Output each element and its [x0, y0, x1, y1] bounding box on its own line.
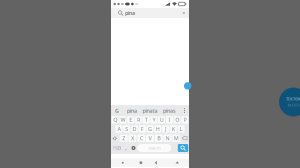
button[interactable]: Hide keyboard: [171, 159, 184, 167]
staticText: G: [115, 107, 119, 114]
button[interactable]: K: [170, 125, 177, 133]
staticText: pina: [125, 9, 135, 17]
button[interactable]: Search: [178, 144, 188, 152]
button[interactable]: B: [155, 134, 163, 142]
staticText: U: [160, 116, 164, 123]
staticText: MOTO: [287, 102, 299, 108]
staticText: O: [175, 116, 179, 123]
staticText: P: [183, 116, 186, 123]
staticText: A: [117, 125, 120, 133]
button[interactable]: Z: [120, 134, 128, 142]
staticText: R: [137, 116, 140, 123]
staticText: H: [156, 125, 160, 133]
button[interactable]: Language: [130, 144, 137, 152]
button[interactable]: N: [164, 134, 171, 142]
button[interactable]: Y: [150, 116, 157, 123]
staticText: V: [148, 135, 151, 142]
staticText: J: [165, 125, 166, 133]
staticText: search: [148, 145, 160, 151]
button[interactable]: G: [147, 125, 153, 133]
button[interactable]: Shift: [112, 134, 119, 142]
button[interactable]: pina: [111, 8, 189, 18]
button[interactable]: D: [131, 125, 138, 133]
button[interactable]: Home: [134, 159, 147, 167]
button[interactable]: C: [137, 134, 145, 142]
button[interactable]: Space: [137, 144, 171, 152]
staticText: Q: [113, 116, 117, 123]
staticText: pina: [127, 107, 137, 114]
button[interactable]: J: [162, 125, 169, 133]
button[interactable]: W: [119, 116, 126, 123]
button[interactable]: V: [146, 134, 154, 142]
staticText: S: [125, 125, 128, 133]
staticText: W: [120, 116, 125, 123]
staticText: L: [180, 125, 183, 133]
button[interactable]: L: [178, 125, 184, 133]
button[interactable]: F: [139, 125, 146, 133]
button[interactable]: Back: [153, 159, 166, 167]
staticText: E: [129, 116, 132, 123]
button[interactable]: R: [135, 116, 142, 123]
button[interactable]: A: [115, 125, 122, 133]
staticText: pinata: [142, 107, 157, 114]
staticText: TIKTOK: [286, 96, 300, 101]
staticText: K: [172, 125, 175, 133]
staticText: pinas: [163, 107, 176, 114]
button[interactable]: Q: [112, 116, 119, 123]
staticText: Z: [122, 135, 125, 142]
button[interactable]: I: [166, 116, 173, 123]
staticText: I: [168, 116, 170, 123]
button[interactable]: U: [158, 116, 165, 123]
staticText: F: [141, 125, 144, 133]
button[interactable]: Backspace: [181, 134, 188, 142]
button[interactable]: O: [174, 116, 181, 123]
staticText: N: [165, 135, 169, 142]
button[interactable]: Symbols: [112, 144, 122, 152]
button[interactable]: M: [172, 134, 180, 142]
button[interactable]: E: [127, 116, 134, 123]
staticText: T: [145, 116, 148, 123]
button[interactable]: X: [129, 134, 136, 142]
button[interactable]: T: [143, 116, 150, 123]
button[interactable]: H: [154, 125, 161, 133]
staticText: M: [174, 135, 179, 142]
button[interactable]: S: [123, 125, 130, 133]
staticText: D: [132, 125, 136, 133]
staticText: ?123: [113, 145, 121, 151]
staticText: ,: [125, 144, 126, 152]
staticText: B: [157, 135, 160, 142]
button[interactable]: Comma: [122, 144, 130, 152]
staticText: X: [131, 135, 134, 142]
button[interactable]: Recents: [116, 159, 129, 167]
staticText: G: [148, 125, 152, 133]
staticText: Y: [152, 116, 155, 123]
staticText: C: [140, 135, 143, 142]
button[interactable]: P: [181, 116, 188, 123]
